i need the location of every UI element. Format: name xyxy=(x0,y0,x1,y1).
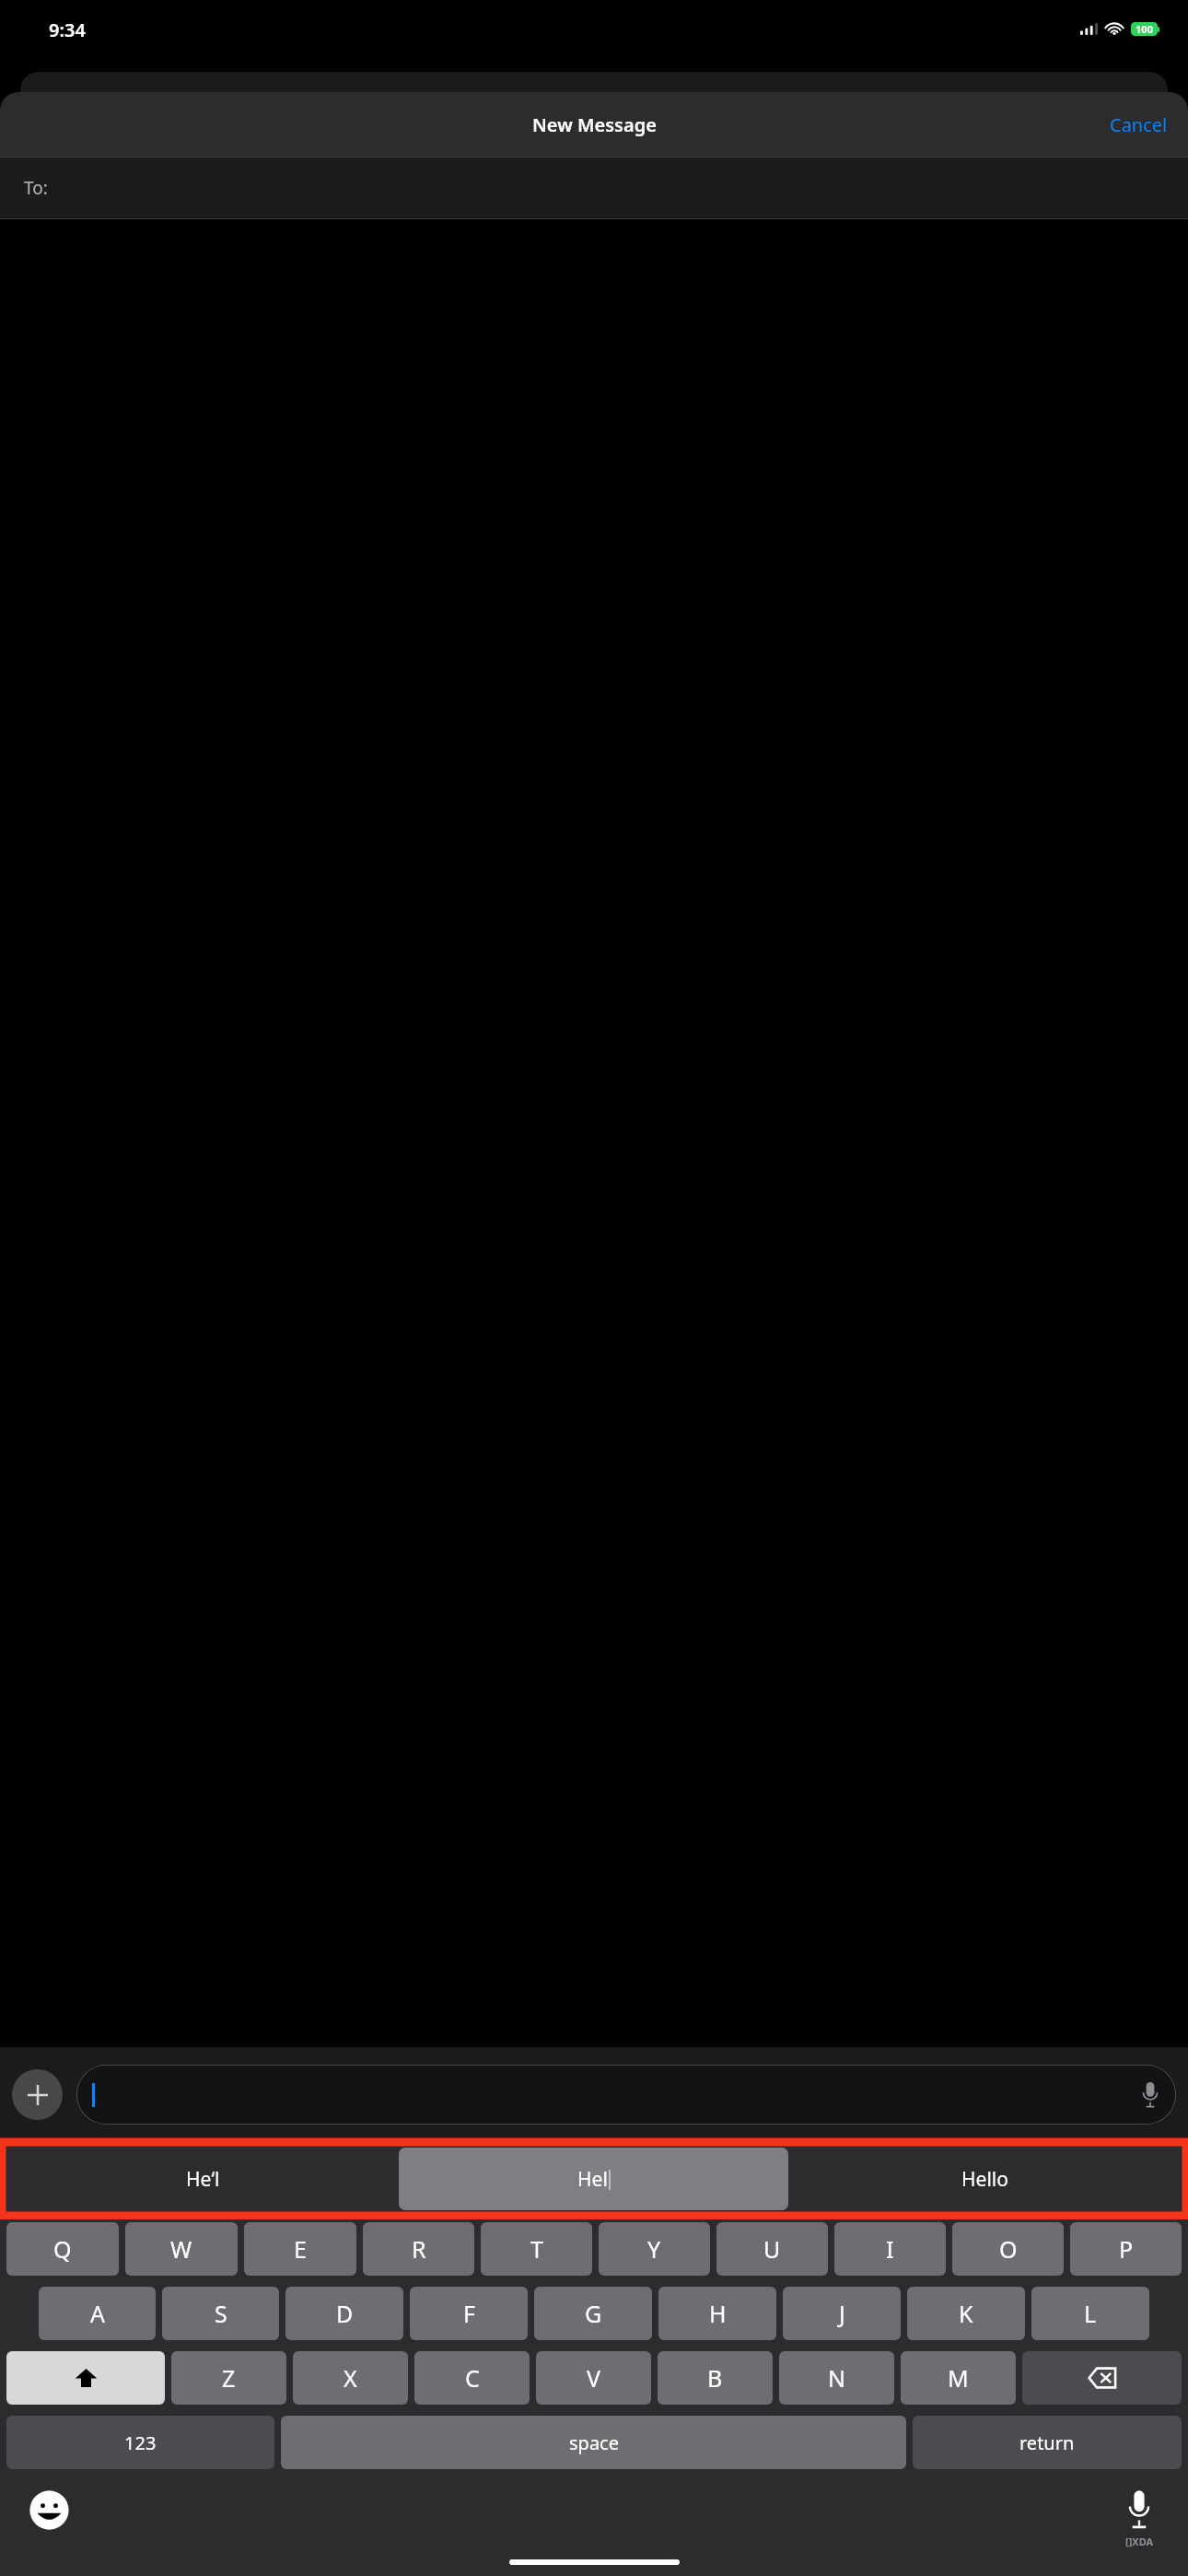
staticText: To: xyxy=(24,176,48,200)
staticText: I xyxy=(886,2233,894,2265)
button[interactable]: P xyxy=(1070,2222,1182,2276)
button[interactable]: B xyxy=(658,2351,773,2405)
staticText: Hel xyxy=(577,2166,608,2193)
button[interactable]: space xyxy=(281,2416,906,2469)
button[interactable]: S xyxy=(162,2287,279,2340)
button[interactable]: T xyxy=(481,2222,592,2276)
button[interactable]: U xyxy=(716,2222,828,2276)
staticText: D xyxy=(336,2298,354,2329)
staticText: Q xyxy=(53,2233,72,2265)
button[interactable]: Hello xyxy=(790,2148,1180,2210)
button[interactable]: M xyxy=(901,2351,1016,2405)
staticText: P xyxy=(1119,2233,1134,2265)
staticText: C xyxy=(465,2362,480,2394)
button[interactable]: C xyxy=(414,2351,530,2405)
button[interactable]: D xyxy=(285,2287,403,2340)
staticText: 9:34 xyxy=(49,18,86,42)
button[interactable]: J xyxy=(783,2287,901,2340)
button[interactable]: I xyxy=(834,2222,946,2276)
button[interactable]: Y xyxy=(599,2222,710,2276)
staticText: Y xyxy=(647,2233,661,2265)
button[interactable]: F xyxy=(410,2287,528,2340)
button[interactable]: N xyxy=(779,2351,894,2405)
button[interactable]: V xyxy=(536,2351,651,2405)
staticText: U xyxy=(763,2233,781,2265)
staticText: Z xyxy=(222,2362,236,2394)
button[interactable]: K xyxy=(907,2287,1025,2340)
button[interactable]: Z xyxy=(171,2351,286,2405)
staticText: T xyxy=(530,2233,543,2265)
button[interactable]: Add attachment xyxy=(12,2069,63,2120)
staticText: 100 xyxy=(1136,22,1153,36)
staticText: []XDA xyxy=(1125,2535,1154,2548)
button[interactable]: Cancel xyxy=(1089,103,1188,146)
button[interactable]: Shift xyxy=(6,2351,165,2405)
staticText: S xyxy=(215,2298,227,2329)
button[interactable]: E xyxy=(244,2222,356,2276)
staticText: R xyxy=(412,2233,426,2265)
button[interactable]: R xyxy=(363,2222,474,2276)
staticText: O xyxy=(999,2233,1018,2265)
button[interactable]: Hel xyxy=(399,2148,788,2210)
staticText: A xyxy=(90,2298,105,2329)
button[interactable]: return xyxy=(913,2416,1182,2469)
staticText: 123 xyxy=(124,2430,157,2455)
staticText: G xyxy=(585,2298,602,2329)
staticText: X xyxy=(344,2362,357,2394)
staticText: B xyxy=(707,2362,723,2394)
staticText: H xyxy=(709,2298,727,2329)
staticText: F xyxy=(463,2298,475,2329)
staticText: W xyxy=(170,2233,192,2265)
staticText: V xyxy=(587,2362,601,2394)
button[interactable]: He‘l xyxy=(8,2148,397,2210)
button[interactable]: G xyxy=(534,2287,652,2340)
button[interactable]: H xyxy=(658,2287,776,2340)
staticText: Hello xyxy=(961,2166,1008,2193)
button[interactable]: O xyxy=(952,2222,1064,2276)
staticText: He‘l xyxy=(186,2166,220,2193)
staticText: K xyxy=(959,2298,973,2329)
staticText: J xyxy=(839,2298,845,2329)
staticText: M xyxy=(948,2362,969,2394)
staticText: E xyxy=(294,2233,307,2265)
staticText: Cancel xyxy=(1110,112,1168,137)
staticText: N xyxy=(828,2362,846,2394)
button[interactable]: Emoji xyxy=(25,2486,73,2534)
other: Dictate xyxy=(1141,2082,1159,2108)
button[interactable]: Dictate xyxy=(76,2065,1176,2125)
button[interactable]: L xyxy=(1031,2287,1149,2340)
staticText: return xyxy=(1019,2430,1075,2455)
button[interactable]: 123 xyxy=(6,2416,274,2469)
button[interactable]: To: xyxy=(0,158,1188,218)
button[interactable]: Dictation xyxy=(1118,2484,1160,2535)
staticText: New Message xyxy=(532,112,657,137)
staticText: L xyxy=(1084,2298,1097,2329)
button[interactable]: W xyxy=(125,2222,238,2276)
staticText: space xyxy=(569,2430,619,2455)
button[interactable]: Backspace xyxy=(1022,2351,1182,2405)
button[interactable]: X xyxy=(293,2351,408,2405)
button[interactable]: Q xyxy=(6,2222,119,2276)
button[interactable]: A xyxy=(39,2287,156,2340)
